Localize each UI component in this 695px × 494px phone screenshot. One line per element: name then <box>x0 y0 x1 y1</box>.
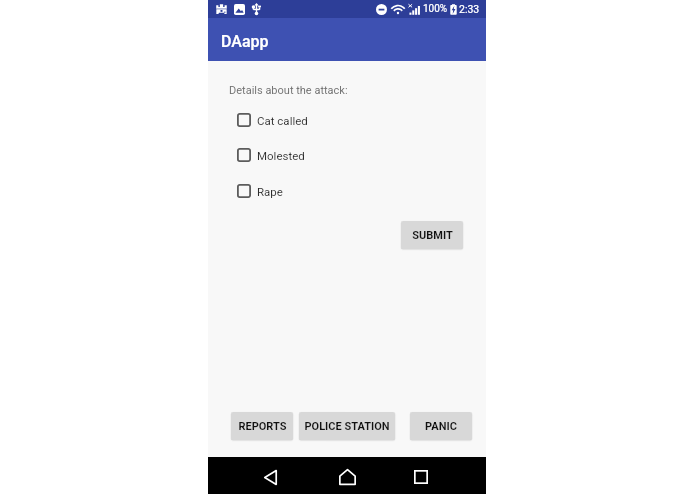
button[interactable]: Recents <box>397 458 445 494</box>
staticText: Rape <box>257 185 283 198</box>
button[interactable]: SUBMIT <box>401 221 463 249</box>
button[interactable]: POLICE STATION <box>299 412 395 440</box>
staticText: SUBMIT <box>412 229 453 242</box>
button[interactable]: REPORTS <box>231 412 293 440</box>
staticText: 2:33 <box>459 3 480 15</box>
staticText: DAapp <box>221 32 269 51</box>
staticText: Details about the attack: <box>229 84 348 97</box>
staticText: PANIC <box>425 420 457 433</box>
button[interactable]: PANIC <box>410 412 472 440</box>
button[interactable]: Rape <box>237 184 283 198</box>
button[interactable]: Home <box>323 458 371 494</box>
staticText: Molested <box>257 149 305 162</box>
staticText: REPORTS <box>238 420 287 433</box>
button[interactable]: Cat called <box>237 113 308 127</box>
staticText: 100% <box>423 3 448 15</box>
button[interactable]: Back <box>246 459 294 494</box>
staticText: Cat called <box>257 114 308 127</box>
staticText: POLICE STATION <box>304 420 390 433</box>
button[interactable]: Molested <box>237 148 305 162</box>
